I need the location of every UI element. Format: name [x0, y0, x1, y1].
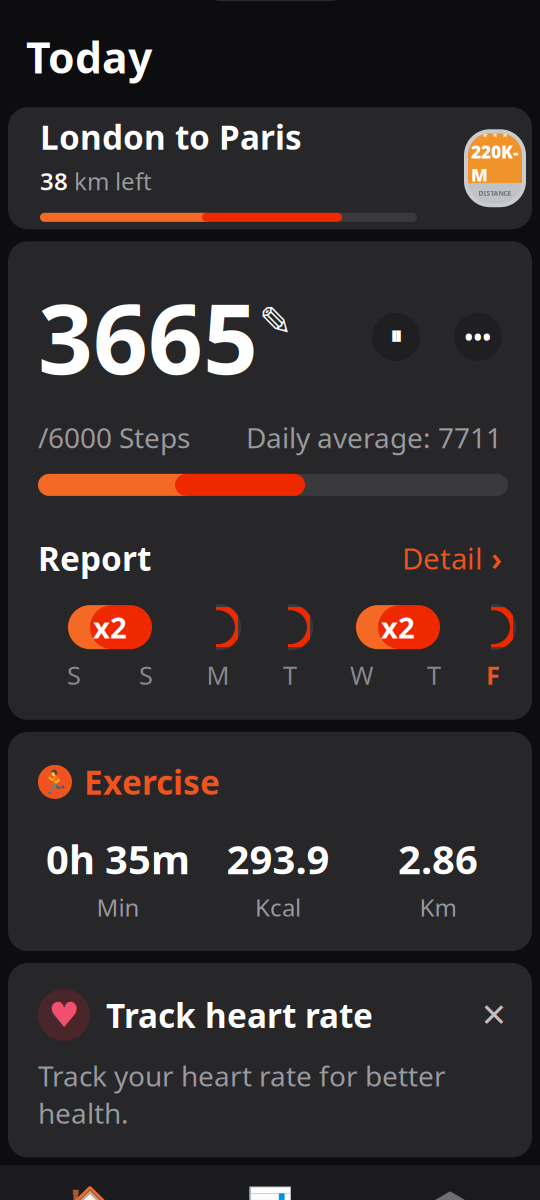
button[interactable]: Detail: [402, 537, 502, 579]
button[interactable]: More options: [454, 313, 502, 361]
staticText: M: [206, 658, 229, 692]
staticText: Min: [96, 891, 139, 923]
staticText: DISTANCE: [478, 189, 511, 198]
staticText: W: [350, 658, 374, 692]
button[interactable]: 🏃: [8, 732, 532, 951]
staticText: Detail: [402, 539, 483, 578]
button[interactable]: Edit step goal: [258, 299, 294, 375]
button[interactable]: London to Paris: [8, 107, 532, 229]
staticText: km left: [74, 165, 152, 197]
staticText: 📊: [247, 1186, 293, 1200]
staticText: Km: [419, 891, 456, 923]
staticText: 2.86: [398, 832, 478, 885]
staticText: 293.9: [226, 832, 329, 885]
staticText: T: [283, 658, 297, 692]
button[interactable]: Settings: [360, 1165, 540, 1200]
staticText: 🏃: [41, 769, 69, 795]
staticText: Kcal: [255, 891, 301, 923]
staticText: 38: [40, 165, 68, 197]
staticText: x2: [381, 608, 415, 647]
staticText: •••: [464, 322, 491, 352]
staticText: 0h 35m: [46, 832, 190, 885]
staticText: 220KM: [471, 140, 519, 186]
staticText: 🏠: [65, 1185, 115, 1200]
staticText: Today: [26, 29, 152, 85]
staticText: Track your heart rate for better health.: [38, 1057, 446, 1131]
staticText: S: [139, 658, 153, 692]
staticText: F: [486, 658, 500, 692]
staticText: T: [427, 658, 441, 692]
staticText: ✎: [259, 299, 293, 344]
staticText: S: [67, 658, 81, 692]
staticText: London to Paris: [40, 115, 302, 159]
button[interactable]: Dismiss: [474, 995, 514, 1035]
staticText: Track heart rate: [106, 993, 373, 1037]
staticText: ›: [491, 537, 502, 579]
button[interactable]: Pause: [372, 313, 420, 361]
staticText: ★ ★ ★: [481, 130, 508, 139]
staticText: ♥: [48, 995, 79, 1035]
staticText: Report: [38, 536, 151, 580]
staticText: /6000 Steps: [38, 419, 190, 456]
staticText: Exercise: [84, 760, 220, 804]
button[interactable]: Statistics: [180, 1165, 360, 1200]
staticText: ✕: [480, 997, 507, 1033]
staticText: Daily average: 7711: [246, 419, 502, 456]
staticText: 3665: [38, 273, 258, 401]
staticText: ⏸: [389, 325, 402, 349]
button[interactable]: Home: [0, 1165, 180, 1200]
staticText: x2: [93, 608, 127, 647]
staticText: ⬢: [432, 1185, 467, 1200]
